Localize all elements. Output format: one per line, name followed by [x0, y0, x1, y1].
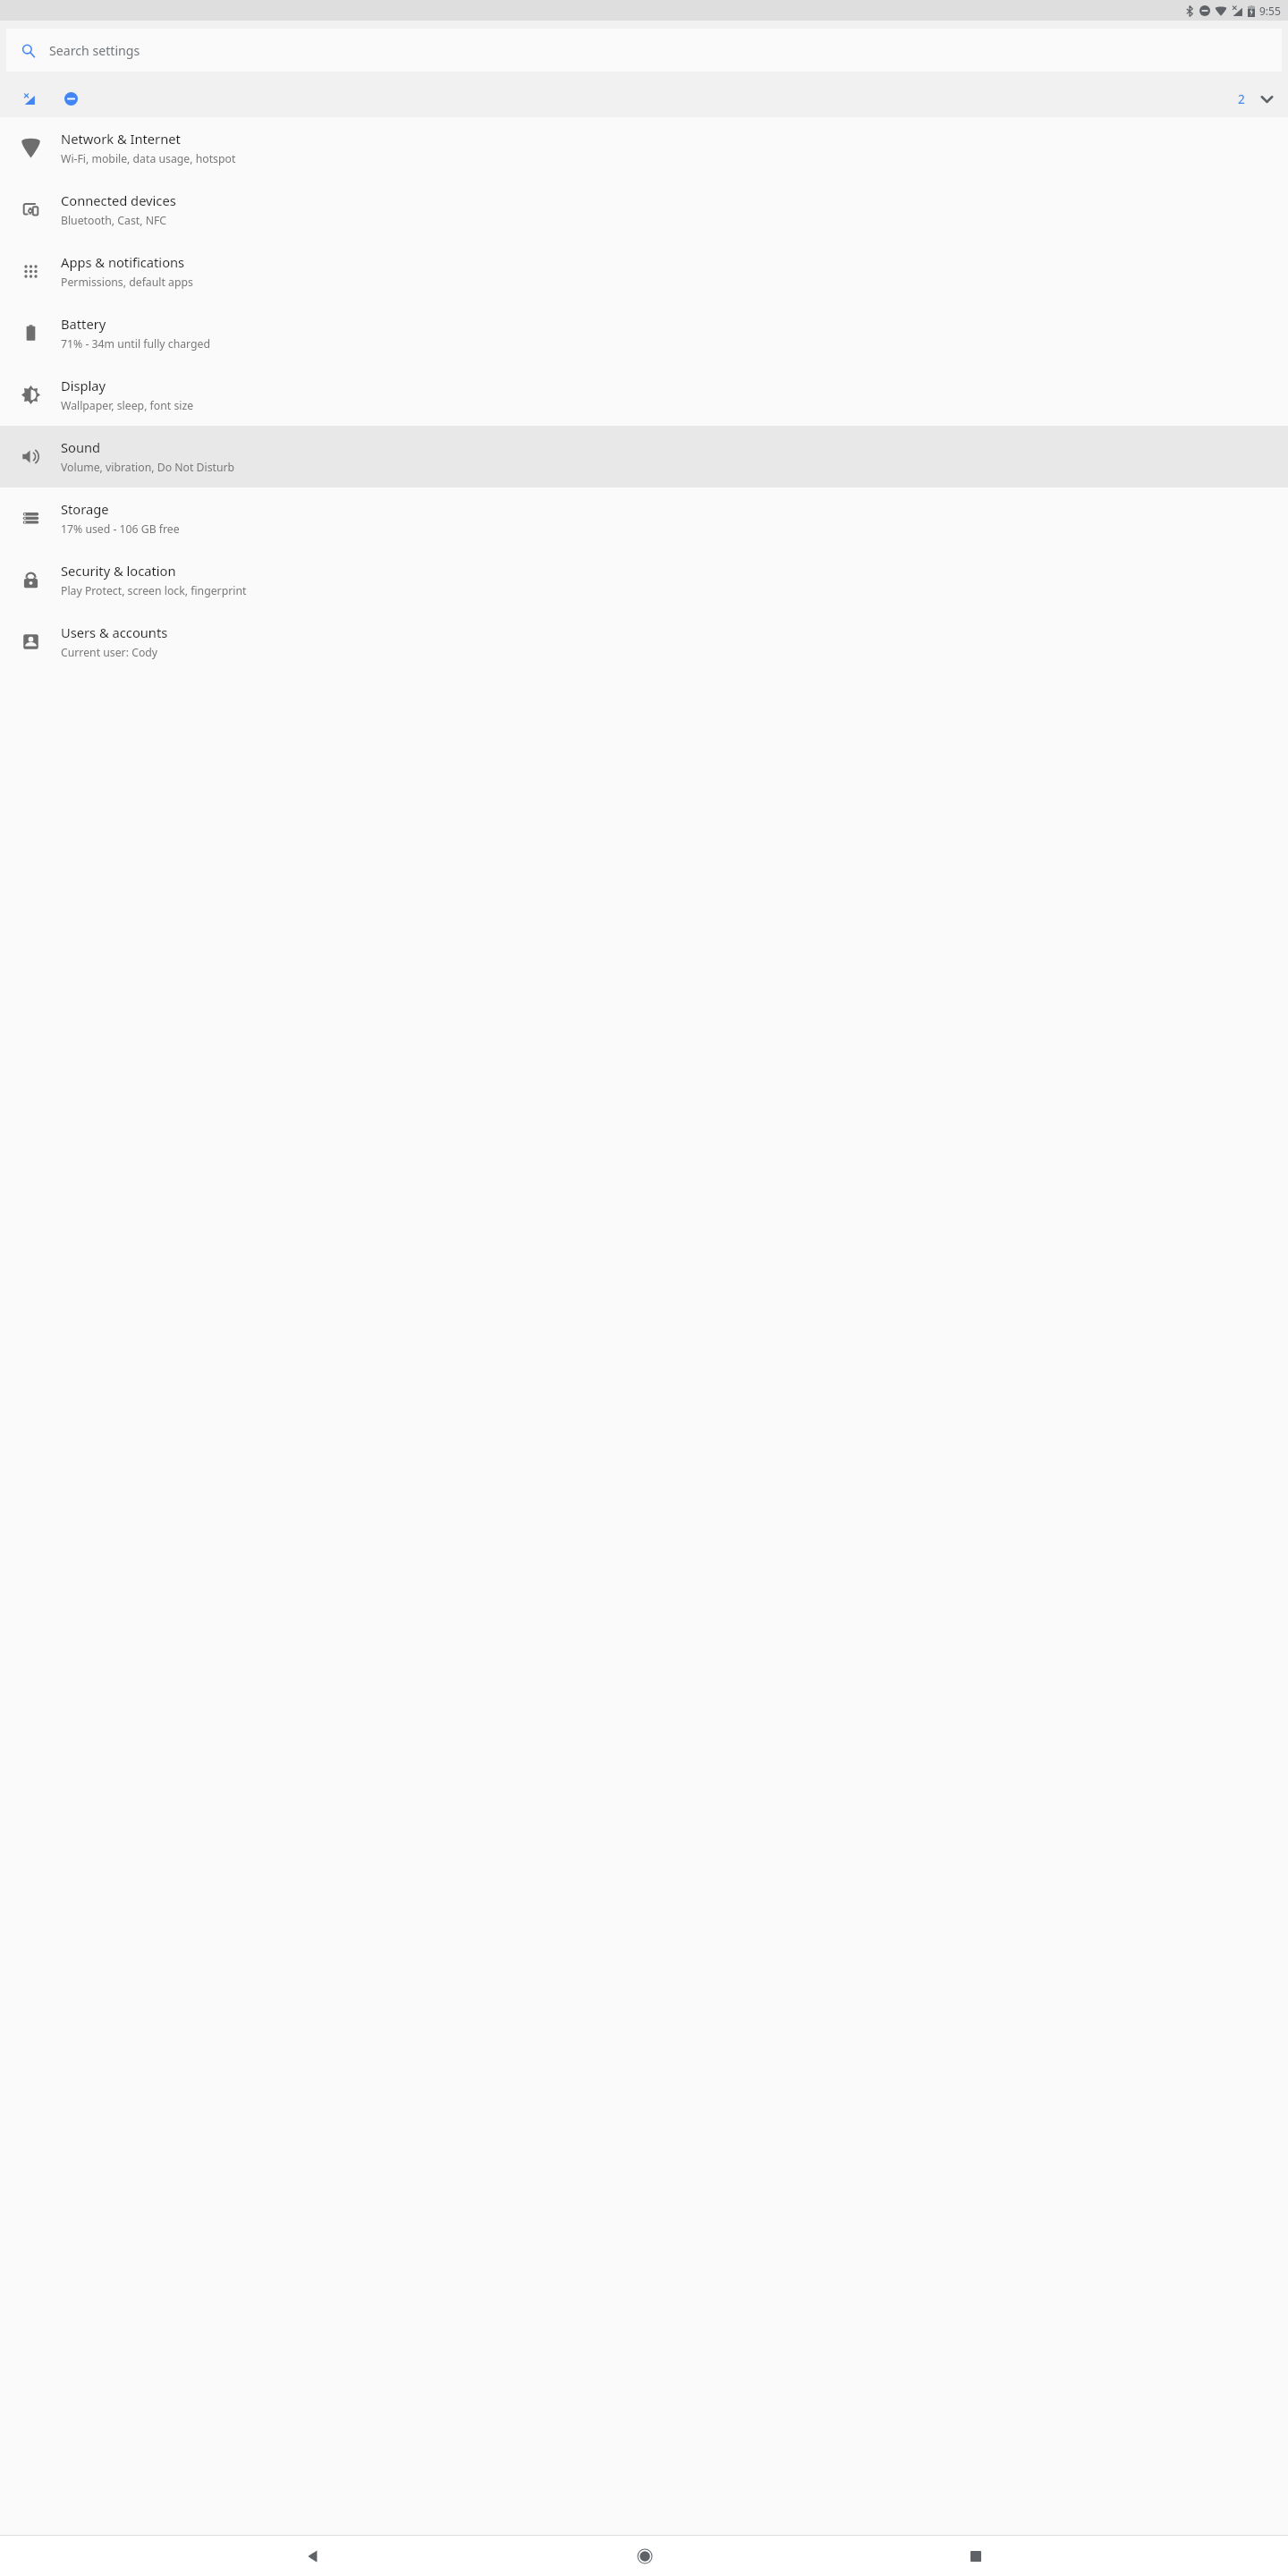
- staticText: Search settings: [49, 42, 140, 59]
- staticText: Play Protect, screen lock, fingerprint: [61, 583, 247, 598]
- staticText: Permissions, default apps: [61, 275, 193, 290]
- staticText: Display: [61, 377, 106, 394]
- button[interactable]: Sound: [0, 426, 1288, 487]
- staticText: Network & Internet: [61, 130, 181, 148]
- button[interactable]: Network & Internet: [0, 117, 1288, 179]
- button[interactable]: Home: [626, 2538, 663, 2574]
- staticText: 17% used - 106 GB free: [61, 521, 180, 537]
- staticText: Security & location: [61, 562, 176, 580]
- staticText: 2: [1238, 90, 1245, 107]
- button[interactable]: Battery: [0, 302, 1288, 364]
- staticText: Bluetooth, Cast, NFC: [61, 213, 167, 228]
- button[interactable]: Storage: [0, 487, 1288, 549]
- staticText: Apps & notifications: [61, 253, 185, 271]
- button[interactable]: Search settings: [6, 29, 1282, 72]
- button[interactable]: Back: [294, 2538, 331, 2574]
- other: Expand: [1259, 92, 1274, 106]
- button[interactable]: Apps & notifications: [0, 241, 1288, 302]
- button[interactable]: Display: [0, 364, 1288, 426]
- staticText: Current user: Cody: [61, 645, 158, 660]
- button[interactable]: 2: [0, 80, 1288, 117]
- staticText: Wi-Fi, mobile, data usage, hotspot: [61, 151, 236, 166]
- staticText: Connected devices: [61, 191, 176, 209]
- staticText: Battery: [61, 315, 106, 333]
- button[interactable]: Connected devices: [0, 179, 1288, 241]
- staticText: Users & accounts: [61, 623, 168, 641]
- staticText: Volume, vibration, Do Not Disturb: [61, 460, 235, 475]
- staticText: Wallpaper, sleep, font size: [61, 398, 194, 413]
- button[interactable]: Recent apps: [957, 2538, 994, 2574]
- staticText: Sound: [61, 438, 101, 456]
- button[interactable]: Users & accounts: [0, 611, 1288, 673]
- staticText: Storage: [61, 500, 109, 518]
- staticText: 9:55: [1259, 4, 1281, 18]
- staticText: 71% - 34m until fully charged: [61, 336, 211, 352]
- button[interactable]: Security & location: [0, 549, 1288, 611]
